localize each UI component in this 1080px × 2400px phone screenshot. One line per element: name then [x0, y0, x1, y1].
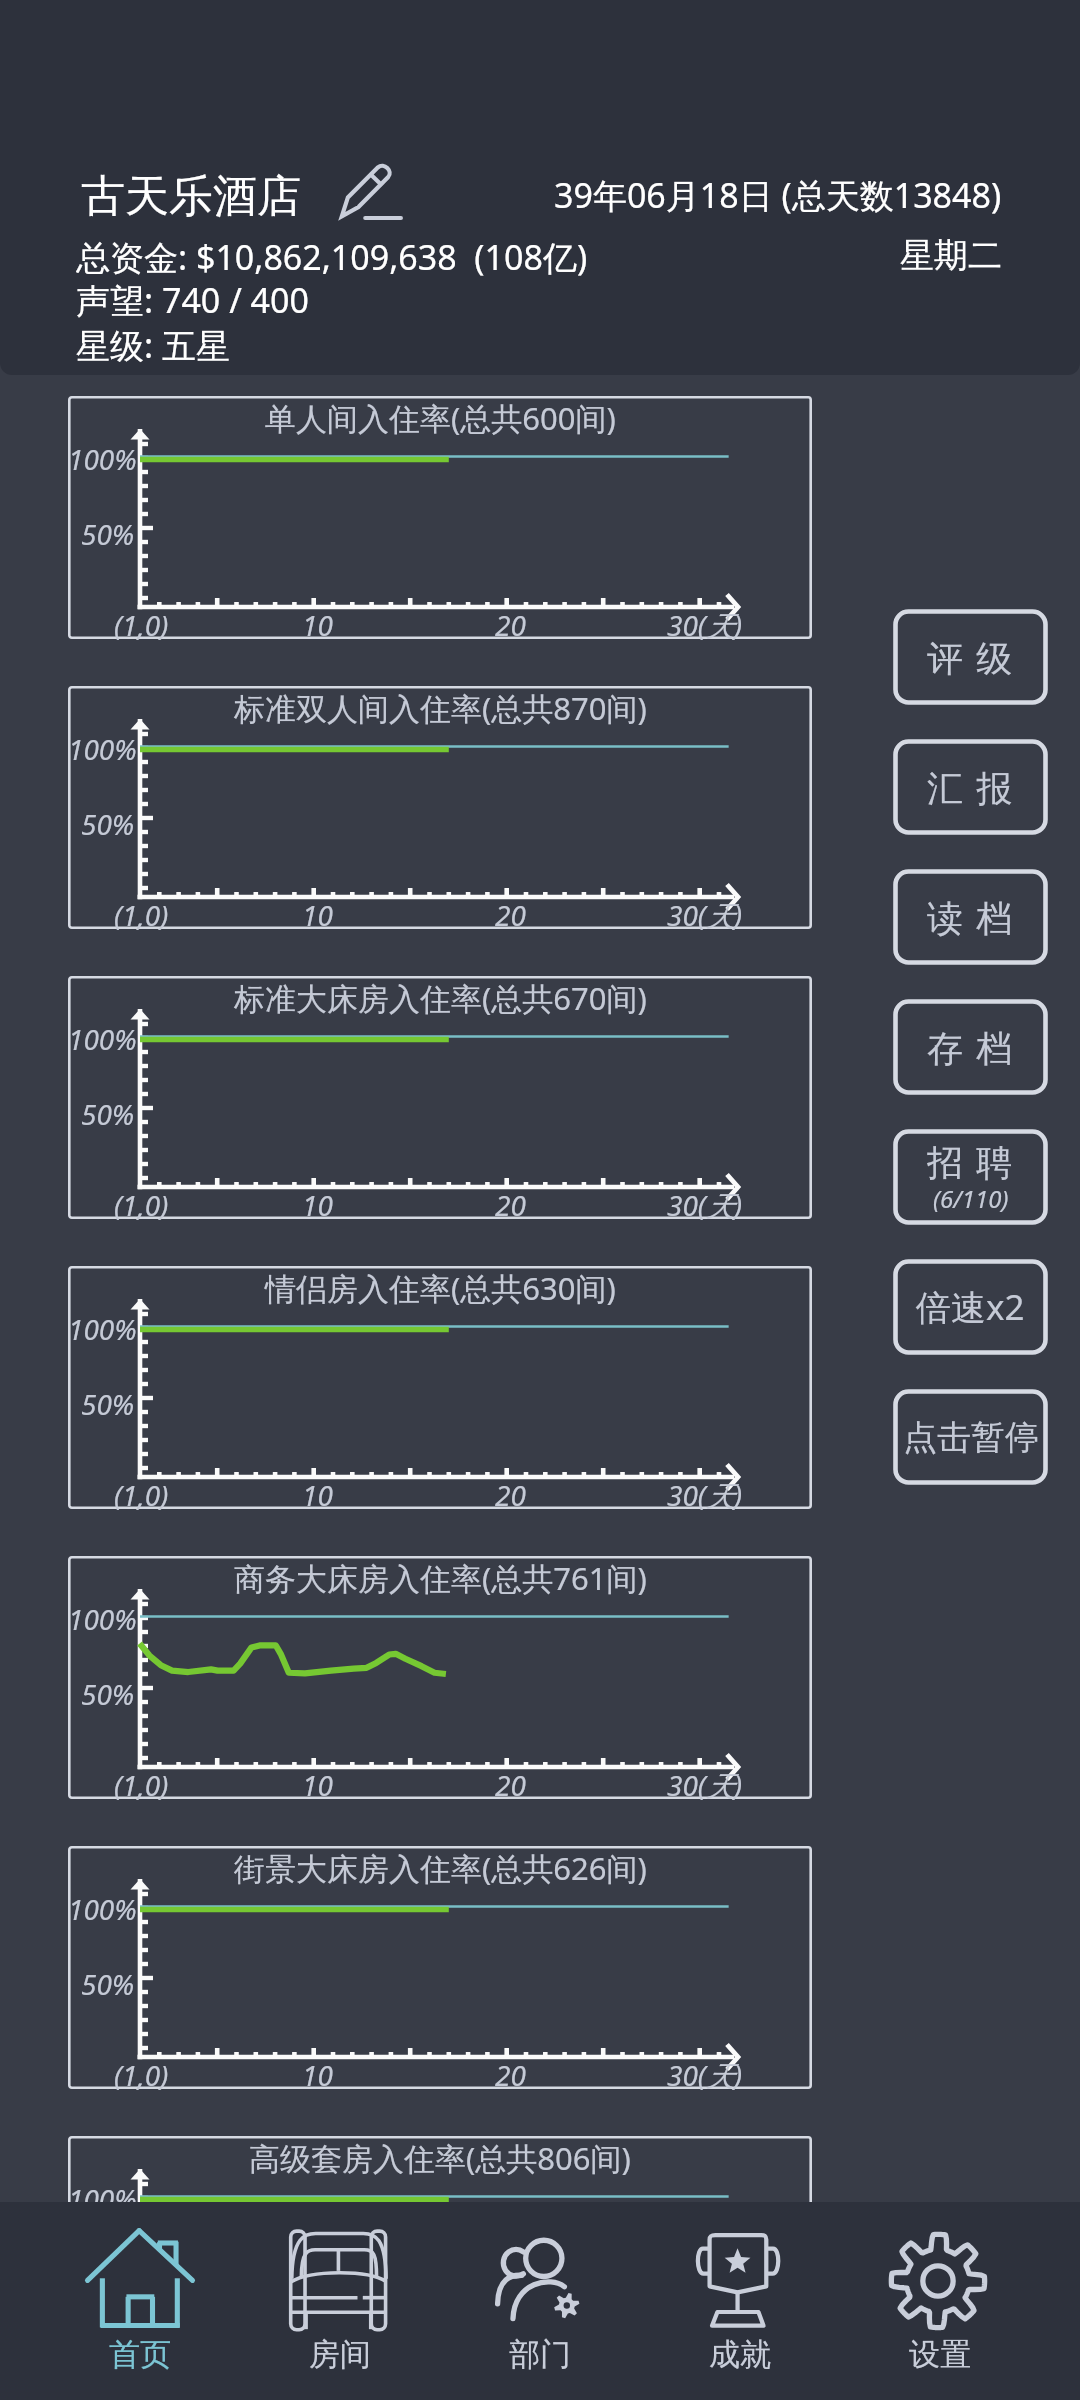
- staticText: (1,0): [114, 896, 169, 934]
- staticText: 30(天): [667, 1476, 743, 1514]
- staticText: 总资金: $10,862,109,638 (108亿): [76, 234, 588, 280]
- staticText: 星期二: [900, 234, 1002, 277]
- staticText: 30(天): [667, 1186, 743, 1224]
- staticText: 50%: [81, 1965, 135, 2003]
- button[interactable]: 招 聘: [893, 1129, 1048, 1225]
- staticText: 点击暂停: [903, 1416, 1039, 1459]
- staticText: 招 聘: [927, 1137, 1015, 1186]
- staticText: 10: [302, 1476, 333, 1514]
- button[interactable]: 首页: [40, 2202, 240, 2400]
- staticText: 10: [302, 1186, 333, 1224]
- staticText: 标准双人间入住率(总共870间): [234, 687, 647, 729]
- button[interactable]: 部门: [440, 2202, 640, 2400]
- staticText: 20: [495, 2346, 526, 2384]
- staticText: (6/110): [933, 1182, 1009, 1215]
- button[interactable]: 高级套房入住率(总共806间): [68, 2136, 812, 2379]
- staticText: 100%: [68, 1600, 129, 1638]
- staticText: 30(天): [667, 896, 743, 934]
- staticText: 情侣房入住率(总共630间): [265, 1267, 616, 1309]
- staticText: (1,0): [114, 606, 169, 644]
- staticText: 10: [302, 606, 333, 644]
- staticText: 存 档: [927, 1023, 1015, 1072]
- staticText: 10: [302, 896, 333, 934]
- button[interactable]: 读 档: [893, 869, 1048, 965]
- staticText: 100%: [68, 440, 129, 478]
- staticText: 20: [495, 896, 526, 934]
- staticText: 读 档: [927, 893, 1015, 942]
- staticText: 30(天): [667, 1766, 743, 1804]
- staticText: 100%: [68, 2180, 129, 2218]
- button[interactable]: 房间: [240, 2202, 440, 2400]
- staticText: 30(天): [667, 2346, 743, 2384]
- button[interactable]: 设置: [840, 2202, 1040, 2400]
- button[interactable]: 单人间入住率(总共600间): [68, 396, 812, 639]
- staticText: 20: [495, 606, 526, 644]
- button[interactable]: 评 级: [893, 609, 1048, 705]
- staticText: 部门: [509, 2335, 571, 2374]
- staticText: 50%: [81, 1095, 135, 1133]
- staticText: 39年06月18日 (总天数13848): [554, 172, 1002, 218]
- button[interactable]: 编辑酒店名称: [337, 160, 401, 224]
- button[interactable]: 情侣房入住率(总共630间): [68, 1266, 812, 1509]
- staticText: 街景大床房入住率(总共626间): [234, 1847, 647, 1889]
- staticText: 30(天): [667, 606, 743, 644]
- staticText: 10: [302, 1766, 333, 1804]
- button[interactable]: 商务大床房入住率(总共761间): [68, 1556, 812, 1799]
- staticText: 100%: [68, 1890, 129, 1928]
- button[interactable]: 成就: [640, 2202, 840, 2400]
- staticText: 100%: [68, 1020, 129, 1058]
- staticText: (1,0): [114, 1766, 169, 1804]
- staticText: 房间: [309, 2335, 371, 2374]
- staticText: 古天乐酒店: [81, 169, 301, 224]
- button[interactable]: 存 档: [893, 999, 1048, 1095]
- staticText: 30(天): [667, 2056, 743, 2094]
- staticText: 汇 报: [927, 763, 1015, 812]
- staticText: 首页: [109, 2335, 171, 2374]
- staticText: 声望: 740 / 400: [76, 277, 309, 323]
- staticText: 50%: [81, 2255, 135, 2293]
- button[interactable]: 倍速x2: [893, 1259, 1048, 1355]
- staticText: (1,0): [114, 2346, 169, 2384]
- staticText: 10: [302, 2346, 333, 2384]
- button[interactable]: 点击暂停: [893, 1389, 1048, 1485]
- staticText: 设置: [909, 2335, 971, 2374]
- button[interactable]: 标准大床房入住率(总共670间): [68, 976, 812, 1219]
- staticText: 20: [495, 2056, 526, 2094]
- staticText: 100%: [68, 1310, 129, 1348]
- staticText: (1,0): [114, 1476, 169, 1514]
- staticText: 单人间入住率(总共600间): [265, 397, 616, 439]
- button[interactable]: 街景大床房入住率(总共626间): [68, 1846, 812, 2089]
- staticText: (1,0): [114, 2056, 169, 2094]
- staticText: 高级套房入住率(总共806间): [249, 2137, 631, 2179]
- staticText: 商务大床房入住率(总共761间): [234, 1557, 647, 1599]
- staticText: 评 级: [927, 633, 1015, 682]
- staticText: 成就: [709, 2335, 771, 2374]
- staticText: 标准大床房入住率(总共670间): [234, 977, 647, 1019]
- staticText: 星级: 五星: [76, 322, 230, 368]
- staticText: 50%: [81, 515, 135, 553]
- button[interactable]: 汇 报: [893, 739, 1048, 835]
- staticText: 100%: [68, 730, 129, 768]
- staticText: 倍速x2: [916, 1283, 1025, 1331]
- staticText: 50%: [81, 1385, 135, 1423]
- staticText: 50%: [81, 805, 135, 843]
- staticText: (1,0): [114, 1186, 169, 1224]
- button[interactable]: 标准双人间入住率(总共870间): [68, 686, 812, 929]
- staticText: 50%: [81, 1675, 135, 1713]
- staticText: 20: [495, 1186, 526, 1224]
- staticText: 20: [495, 1766, 526, 1804]
- staticText: 20: [495, 1476, 526, 1514]
- staticText: 10: [302, 2056, 333, 2094]
